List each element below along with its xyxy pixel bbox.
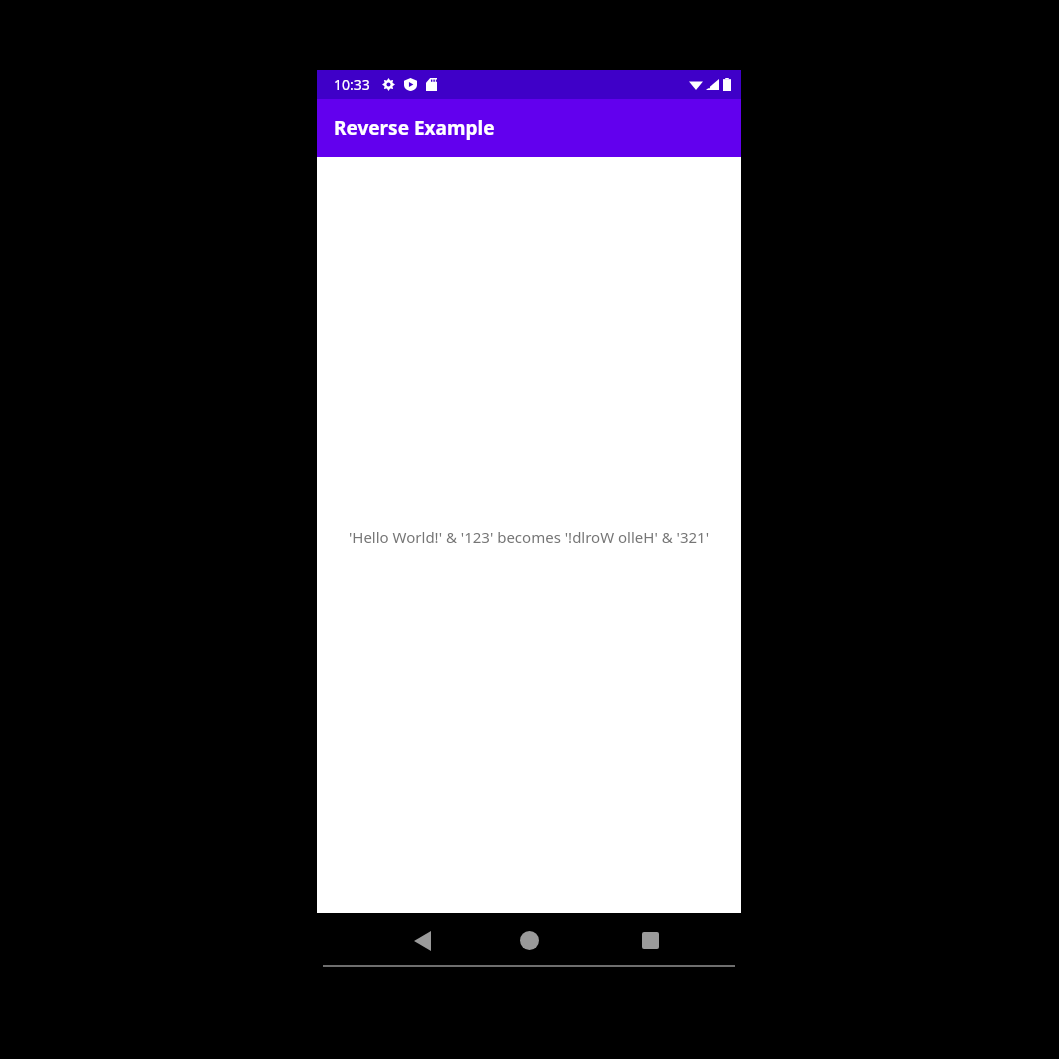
staticText: 'Hello World!' & '123' becomes '!dlroW o…	[317, 527, 741, 547]
staticText: 10:33	[334, 75, 370, 94]
button[interactable]: Back	[387, 913, 457, 968]
staticText: Reverse Example	[334, 115, 495, 141]
button[interactable]: Home	[494, 913, 564, 968]
button[interactable]: Recent apps	[615, 913, 685, 968]
